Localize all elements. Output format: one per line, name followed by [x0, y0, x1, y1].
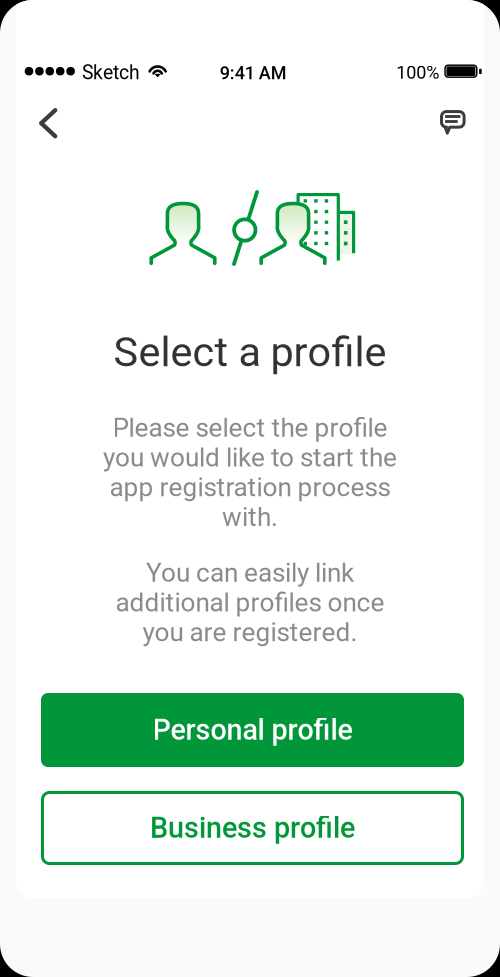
button[interactable]: Business profile	[41, 791, 464, 865]
staticText: Business profile	[150, 811, 355, 845]
staticText: 100%	[396, 62, 439, 83]
staticText: Sketch	[82, 61, 140, 84]
staticText: 9:41 AM	[220, 62, 287, 84]
button[interactable]: Back	[25, 100, 71, 146]
staticText: you would like to start the	[103, 442, 397, 473]
staticText: Select a profile	[113, 328, 386, 376]
staticText: additional profiles once	[115, 587, 384, 618]
button[interactable]: Personal profile	[41, 693, 464, 767]
staticText: app registration process	[109, 472, 390, 503]
staticText: You can easily link	[146, 557, 354, 588]
staticText: Please select the profile	[112, 413, 387, 443]
staticText: Personal profile	[152, 713, 352, 747]
button[interactable]: Messages	[430, 99, 476, 145]
staticText: with.	[222, 502, 278, 532]
staticText: you are registered.	[142, 617, 357, 647]
